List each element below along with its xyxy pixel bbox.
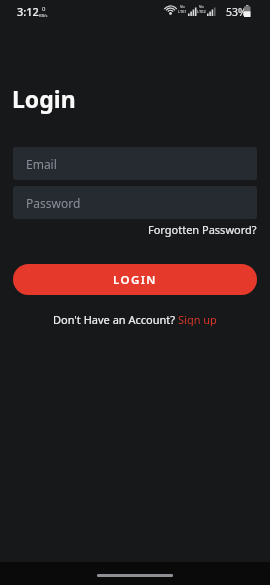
staticText: 3:12 <box>17 4 39 19</box>
button[interactable]: LOGIN <box>13 264 257 295</box>
staticText: LTE2 <box>197 9 206 14</box>
staticText: KB/s <box>39 13 48 18</box>
staticText: 0 <box>42 5 46 13</box>
button[interactable]: Sign up <box>178 312 217 326</box>
staticText: Vo <box>199 4 204 9</box>
button[interactable]: Forgotten Password? <box>148 222 257 237</box>
staticText: LTE1 <box>178 9 187 14</box>
button[interactable]: Password <box>13 186 257 219</box>
staticText: Don't Have an Account? <box>53 312 178 326</box>
staticText: 53% <box>226 5 247 19</box>
button[interactable]: Email <box>13 147 257 180</box>
staticText: Vo <box>180 4 185 9</box>
staticText: Forgotten Password? <box>148 222 257 237</box>
staticText: Email <box>26 156 57 172</box>
staticText: Password <box>26 195 81 211</box>
staticText: LOGIN <box>113 272 157 288</box>
staticText: Login <box>12 83 76 114</box>
staticText: Sign up <box>178 312 217 326</box>
